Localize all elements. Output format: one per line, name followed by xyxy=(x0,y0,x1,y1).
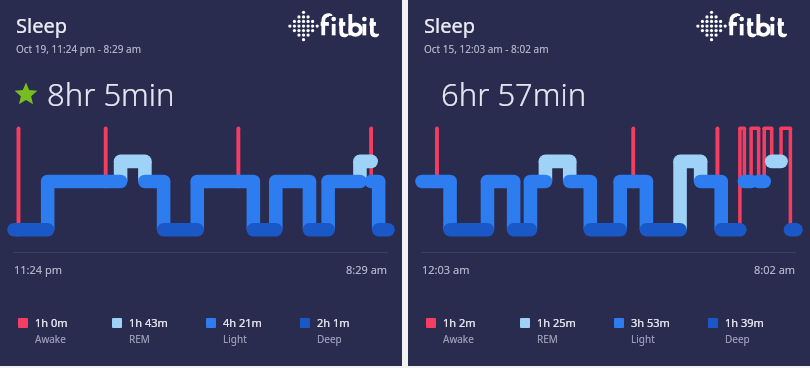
staticText: Oct 15, 12:03 am - 8:02 am xyxy=(424,42,549,56)
staticText: Awake xyxy=(443,332,474,346)
staticText: Sleep xyxy=(16,12,67,39)
staticText: Light xyxy=(223,332,247,346)
button[interactable]: 4h 21m xyxy=(204,315,262,346)
staticText: 1h 0m xyxy=(35,315,68,330)
button[interactable]: 2h 1m xyxy=(298,315,350,346)
staticText: 4h 21m xyxy=(223,315,262,330)
staticText: 6hr 57min xyxy=(441,73,587,115)
staticText: Light xyxy=(631,332,655,346)
button[interactable]: 1h 2m xyxy=(424,315,476,346)
staticText: Deep xyxy=(317,332,342,346)
staticText: Sleep xyxy=(424,12,475,39)
staticText: Awake xyxy=(35,332,66,346)
button[interactable]: Sleep xyxy=(424,12,698,56)
staticText: Deep xyxy=(725,332,750,346)
button[interactable]: 3h 53m xyxy=(612,315,670,346)
staticText: 2h 1m xyxy=(317,315,350,330)
button[interactable]: Sleep xyxy=(16,12,290,56)
button[interactable]: 1h 0m xyxy=(16,315,68,346)
staticText: 3h 53m xyxy=(631,315,670,330)
other: Fitbit xyxy=(290,13,388,39)
staticText: 11:24 pm xyxy=(14,262,63,277)
other: Fitbit xyxy=(698,13,796,39)
staticText: 8:29 am xyxy=(346,262,388,277)
button[interactable]: 6hr 57min xyxy=(422,73,810,115)
staticText: 1h 2m xyxy=(443,315,476,330)
button[interactable]: 1h 25m xyxy=(518,315,576,346)
staticText: REM xyxy=(129,332,150,346)
staticText: 1h 39m xyxy=(725,315,764,330)
staticText: 8:02 am xyxy=(754,262,796,277)
staticText: Oct 19, 11:24 pm - 8:29 am xyxy=(16,42,142,56)
staticText: 1h 25m xyxy=(537,315,576,330)
staticText: 1h 43m xyxy=(129,315,168,330)
staticText: 12:03 am xyxy=(422,262,470,277)
button[interactable]: 1h 39m xyxy=(706,315,764,346)
staticText: REM xyxy=(537,332,558,346)
button[interactable]: 8hr 5min xyxy=(14,73,402,115)
button[interactable]: 1h 43m xyxy=(110,315,168,346)
staticText: 8hr 5min xyxy=(47,73,175,115)
